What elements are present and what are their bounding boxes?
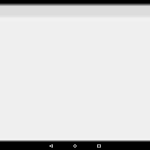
button[interactable]: Home [63,141,87,150]
button[interactable]: Recent apps [87,141,111,150]
button[interactable]: Back [39,141,63,150]
